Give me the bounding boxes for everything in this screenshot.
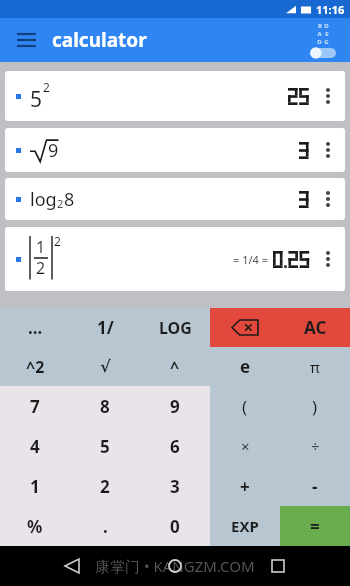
staticText: ( (242, 395, 248, 418)
staticText: π (310, 357, 320, 377)
staticText: D (324, 22, 329, 30)
staticText: ... (28, 316, 43, 339)
staticText: LOG (159, 317, 192, 339)
staticText: ^2 (26, 356, 45, 378)
button[interactable]: log (5, 178, 345, 220)
staticText: ^ (170, 356, 180, 378)
button[interactable]: EXP (210, 506, 280, 546)
button[interactable]: More options (317, 133, 339, 167)
button[interactable]: = (280, 506, 350, 546)
button[interactable]: 6 (140, 426, 210, 466)
staticText: AC (304, 316, 327, 339)
button[interactable]: More options (317, 182, 339, 216)
button[interactable]: 0 (140, 506, 210, 546)
staticText: EXP (231, 516, 259, 536)
staticText: √ (100, 357, 111, 376)
button[interactable]: More options (317, 242, 339, 276)
staticText: + (240, 475, 250, 498)
staticText: 3 (170, 475, 180, 498)
staticText: 4 (30, 435, 40, 458)
staticText: 9 (170, 395, 180, 418)
button[interactable]: ÷ (280, 426, 350, 466)
staticText: 1 (36, 236, 46, 258)
staticText: 0 (170, 515, 180, 538)
button[interactable]: 5 (70, 426, 140, 466)
button[interactable]: 1/ (70, 308, 140, 347)
button[interactable]: Backspace (210, 308, 280, 347)
staticText: calculator (52, 27, 147, 53)
staticText: 7 (30, 395, 40, 418)
button[interactable]: √ (70, 347, 140, 386)
button[interactable]: ( (210, 386, 280, 426)
staticText: 康掌门 • KANGZM.COM (95, 556, 255, 576)
button[interactable]: Recents (262, 550, 294, 582)
button[interactable]: 9 (140, 386, 210, 426)
staticText: ) (312, 395, 318, 418)
staticText: 5 (100, 435, 110, 458)
button[interactable]: AC (280, 308, 350, 347)
button[interactable]: e (210, 347, 280, 386)
staticText: 9 (48, 138, 59, 163)
button[interactable]: ) (280, 386, 350, 426)
button[interactable]: 5 (5, 71, 345, 121)
button[interactable]: Angle unit RAD DEG (304, 21, 342, 59)
button[interactable]: 3 (140, 466, 210, 506)
button[interactable]: ^ (140, 347, 210, 386)
button[interactable]: ^2 (0, 347, 70, 386)
button[interactable]: π (280, 347, 350, 386)
staticText: 2 (100, 475, 110, 498)
button[interactable]: % (0, 506, 70, 546)
staticText: 2 (36, 257, 46, 279)
button[interactable]: Home (159, 550, 191, 582)
staticText: 2 (57, 196, 64, 211)
staticText: R (318, 22, 322, 30)
staticText: A (317, 30, 322, 38)
button[interactable]: - (280, 466, 350, 506)
button[interactable]: 8 (70, 386, 140, 426)
staticText: 6 (170, 435, 180, 458)
staticText: log (30, 187, 57, 212)
button[interactable]: 7 (0, 386, 70, 426)
staticText: D (317, 38, 322, 46)
staticText: = 1/4 = (233, 252, 268, 267)
staticText: 2 (43, 79, 50, 95)
staticText: % (27, 515, 43, 538)
staticText: E (325, 30, 329, 38)
staticText: 5 (30, 85, 43, 114)
staticText: 8 (100, 395, 110, 418)
button[interactable]: 4 (0, 426, 70, 466)
staticText: 1 (30, 475, 40, 498)
button[interactable]: LOG (140, 308, 210, 347)
button[interactable]: . (70, 506, 140, 546)
button[interactable]: + (210, 466, 280, 506)
button[interactable]: 9 (5, 128, 345, 172)
staticText: - (312, 475, 318, 498)
staticText: ÷ (311, 436, 320, 456)
staticText: 1/ (97, 316, 114, 339)
staticText: 2 (54, 233, 61, 249)
staticText: . (103, 515, 108, 538)
button[interactable]: Menu (9, 23, 43, 57)
button[interactable]: ... (0, 308, 70, 347)
staticText: G (324, 38, 329, 46)
button[interactable]: Back (56, 550, 88, 582)
button[interactable]: 1 (5, 227, 345, 291)
staticText: = (310, 515, 320, 538)
button[interactable]: More options (317, 79, 339, 113)
staticText: 11:16 (316, 2, 345, 17)
staticText: e (240, 355, 251, 378)
button[interactable]: 1 (0, 466, 70, 506)
button[interactable]: 2 (70, 466, 140, 506)
staticText: × (241, 436, 250, 456)
button[interactable]: × (210, 426, 280, 466)
staticText: 8 (64, 187, 75, 212)
